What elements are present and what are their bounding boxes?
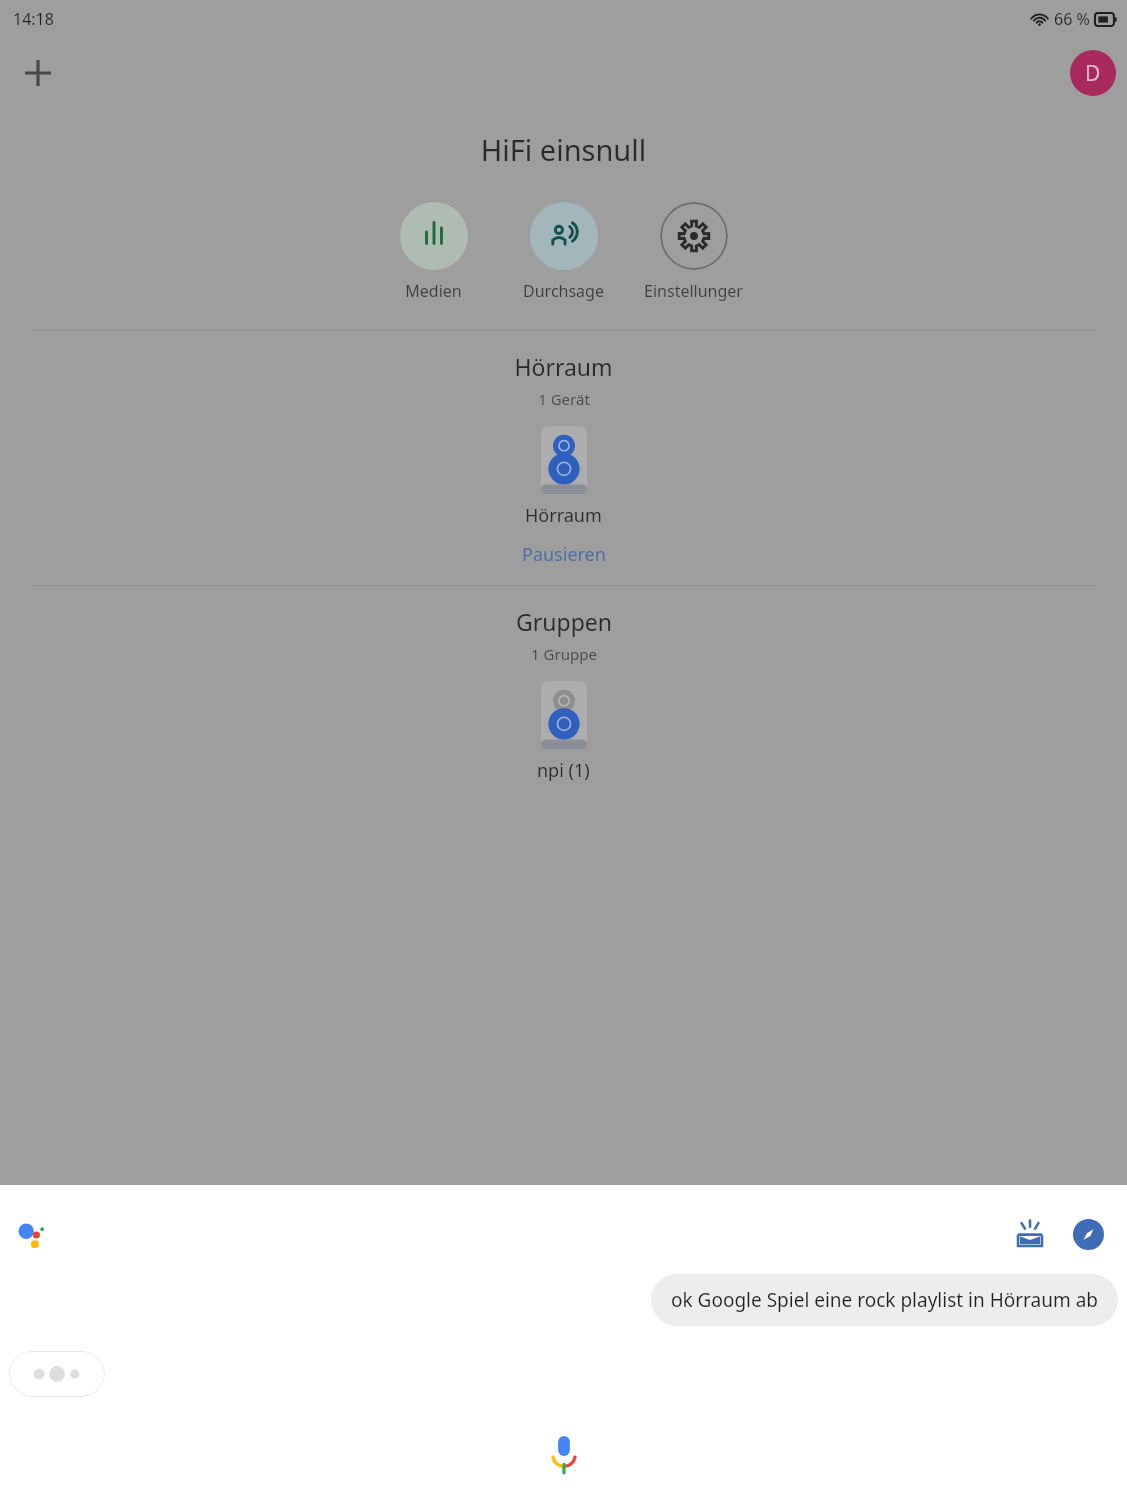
button[interactable] bbox=[9, 1351, 105, 1397]
staticText: 66 % bbox=[1054, 8, 1090, 30]
staticText: HiFi einsnull bbox=[0, 130, 1127, 169]
button[interactable]: Google Assistant bbox=[10, 1213, 56, 1259]
staticText: Pausieren bbox=[522, 542, 606, 567]
button[interactable]: Entdecken bbox=[1063, 1209, 1113, 1259]
button[interactable]: Medien bbox=[381, 202, 486, 302]
button[interactable]: Durchsage bbox=[511, 202, 616, 302]
staticText: Einstellunger bbox=[644, 280, 743, 302]
staticText: ok Google Spiel eine rock playlist in Hö… bbox=[671, 1287, 1098, 1313]
button[interactable]: Mikrofon bbox=[532, 1422, 596, 1486]
staticText: npi (1) bbox=[537, 758, 590, 783]
staticText: 1 Gruppe bbox=[531, 644, 597, 664]
staticText: 14:18 bbox=[13, 8, 54, 30]
staticText: 1 Gerät bbox=[538, 389, 590, 409]
button[interactable]: Konto bbox=[1070, 50, 1116, 96]
button[interactable]: Einstellunger bbox=[641, 202, 746, 302]
staticText: Hörraum bbox=[514, 351, 613, 382]
staticText: Medien bbox=[405, 280, 462, 302]
staticText: Gruppen bbox=[516, 606, 612, 637]
button[interactable]: Tastatur bbox=[1005, 1209, 1055, 1259]
button[interactable]: Hinzufügen bbox=[8, 43, 68, 103]
staticText: D bbox=[1085, 59, 1101, 88]
button[interactable]: Pausieren bbox=[510, 539, 618, 570]
button[interactable]: Hörraum bbox=[511, 424, 616, 530]
staticText: Durchsage bbox=[523, 280, 604, 302]
button[interactable]: npi (1) bbox=[523, 679, 604, 785]
button[interactable]: ok Google Spiel eine rock playlist in Hö… bbox=[651, 1274, 1118, 1326]
staticText: Hörraum bbox=[525, 503, 602, 528]
